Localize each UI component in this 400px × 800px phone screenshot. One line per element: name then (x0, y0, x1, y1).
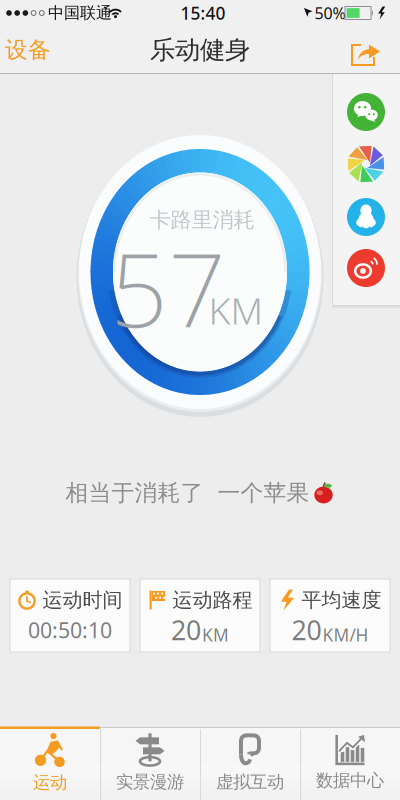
staticText: 设备 (5, 36, 51, 64)
staticText: KM/H (322, 623, 368, 646)
staticText: 中国联通 (48, 3, 112, 23)
button[interactable]: 数据中心 (316, 735, 384, 791)
staticText: 数据中心 (316, 770, 384, 791)
staticText: 虚拟互动 (216, 771, 284, 793)
button[interactable]: 实景漫游 (116, 733, 184, 793)
button[interactable]: Share (349, 42, 383, 70)
staticText: 运动路程 (172, 588, 252, 612)
button[interactable]: QQ (347, 198, 385, 236)
staticText: KM (202, 623, 229, 646)
button[interactable]: 虚拟互动 (216, 733, 284, 793)
staticText: 20 (291, 612, 321, 648)
button[interactable]: 运动 (33, 733, 67, 793)
staticText: 平均速度 (301, 588, 381, 612)
staticText: 运动时间 (42, 588, 122, 612)
button[interactable]: Weibo (347, 249, 385, 287)
staticText: 实景漫游 (116, 771, 184, 793)
button[interactable]: WeChat (347, 93, 385, 131)
staticText: 57 (110, 221, 226, 355)
staticText: 运动 (33, 772, 67, 793)
button[interactable]: 设备 (5, 36, 51, 64)
staticText: 00:50:10 (28, 616, 112, 644)
button[interactable]: 平均速度 (270, 579, 390, 652)
staticText: 20 (171, 612, 201, 648)
staticText: 乐动健身 (150, 34, 250, 65)
staticText: 卡路里消耗 (149, 207, 254, 233)
staticText: 相当于消耗了 一个苹果 (65, 479, 309, 507)
button[interactable]: 运动路程 (140, 579, 260, 652)
staticText: 50% (314, 2, 345, 24)
button[interactable]: 运动时间 (10, 579, 130, 652)
staticText: KM (208, 285, 263, 335)
staticText: 15:40 (180, 1, 225, 24)
button[interactable]: Moments (347, 145, 385, 183)
